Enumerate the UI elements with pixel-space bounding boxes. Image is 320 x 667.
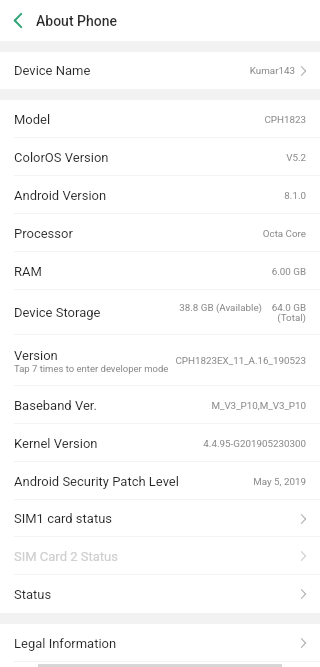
staticText: 6.00 GB — [271, 266, 306, 277]
button[interactable]: SIM Card 2 Status — [0, 537, 320, 575]
staticText: 4.4.95-G201905230300 — [203, 438, 306, 449]
staticText: Device Name — [14, 63, 91, 78]
staticText: CPH1823 — [264, 114, 306, 125]
staticText: Octa Core — [262, 228, 306, 239]
staticText: Version — [14, 348, 58, 363]
staticText: 38.8 GB (Available) — [179, 302, 262, 313]
staticText: V5.2 — [286, 152, 306, 163]
button[interactable]: Kernel Version — [0, 424, 320, 462]
staticText: Android Security Patch Level — [14, 474, 179, 489]
staticText: M_V3_P10,M_V3_P10 — [211, 400, 306, 411]
button[interactable]: Back — [0, 0, 36, 41]
staticText: RAM — [14, 264, 42, 279]
button[interactable]: RAM — [0, 252, 320, 290]
staticText: SIM1 card status — [14, 511, 113, 526]
staticText: Kumar143 — [249, 65, 295, 76]
button[interactable]: Status — [0, 575, 320, 613]
staticText: Legal Information — [14, 636, 117, 651]
button[interactable]: ColorOS Version — [0, 138, 320, 176]
button[interactable]: Android Version — [0, 176, 320, 214]
staticText: Android Version — [14, 188, 107, 203]
button[interactable]: SIM1 card status — [0, 500, 320, 537]
staticText: Status — [14, 587, 52, 602]
button[interactable]: Baseband Ver. — [0, 386, 320, 424]
staticText: 8.1.0 — [284, 190, 306, 201]
staticText: May 5, 2019 — [253, 476, 306, 487]
staticText: 64.0 GB (Total) — [271, 302, 306, 324]
button[interactable]: Device Name — [0, 52, 320, 89]
button[interactable]: Device Storage — [0, 290, 320, 335]
staticText: Baseband Ver. — [14, 398, 97, 413]
staticText: Model — [14, 112, 51, 127]
staticText: Tap 7 times to enter developer mode — [14, 363, 169, 374]
button[interactable]: Version — [0, 335, 320, 386]
staticText: ColorOS Version — [14, 150, 109, 165]
button[interactable]: Legal Information — [0, 624, 320, 662]
staticText: Processor — [14, 226, 73, 241]
button[interactable]: Model — [0, 100, 320, 138]
button[interactable]: Android Security Patch Level — [0, 462, 320, 500]
staticText: CPH1823EX_11_A.16_190523 — [175, 355, 306, 366]
staticText: Kernel Version — [14, 436, 98, 451]
button[interactable]: Processor — [0, 214, 320, 252]
staticText: SIM Card 2 Status — [14, 549, 118, 564]
staticText: About Phone — [36, 13, 117, 29]
staticText: Device Storage — [14, 305, 179, 320]
